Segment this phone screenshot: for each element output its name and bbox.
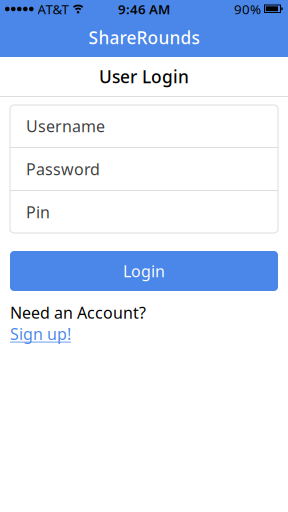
staticText: Username (26, 115, 105, 137)
staticText: 90% (234, 0, 261, 18)
staticText: Need an Account? (10, 302, 146, 323)
staticText: AT&T (38, 0, 69, 18)
staticText: Sign up! (10, 323, 71, 344)
button[interactable]: Username text field (10, 105, 278, 147)
button[interactable]: Login (10, 251, 278, 291)
staticText: ShareRounds (88, 26, 199, 49)
staticText: Password (26, 158, 100, 180)
button[interactable]: Password text field (10, 148, 278, 190)
staticText: User Login (99, 65, 189, 88)
staticText: Login (123, 260, 165, 282)
button[interactable]: Pin text field (10, 191, 278, 233)
staticText: 9:46 AM (118, 0, 170, 18)
staticText: Pin (26, 201, 50, 223)
button[interactable]: Sign up! (10, 323, 71, 344)
